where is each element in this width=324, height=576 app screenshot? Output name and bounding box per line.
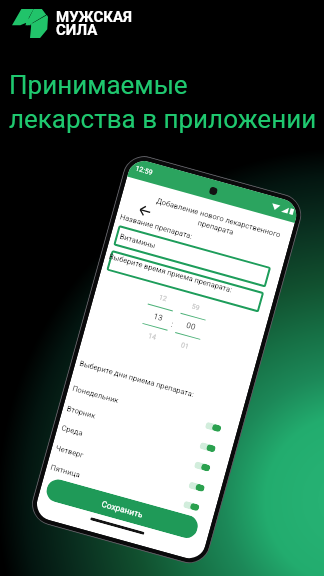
staticText: СИЛА (56, 21, 98, 39)
staticText: 01 (180, 341, 190, 351)
staticText: Выберите дни приема препарата: (78, 359, 195, 399)
staticText: Добавление нового лекарственного препара… (152, 196, 282, 248)
staticText: Витамины (119, 232, 157, 250)
button[interactable]: Среда (60, 419, 212, 476)
staticText: 13 (153, 312, 164, 323)
staticText: МУЖСКАЯ (56, 8, 132, 26)
staticText: Среда (60, 423, 84, 438)
button[interactable]: Четверг (54, 440, 207, 496)
staticText: 00 (185, 321, 196, 332)
button[interactable]: Назад (132, 198, 157, 223)
staticText: 12 (158, 293, 168, 303)
button[interactable]: Пятница (49, 459, 201, 515)
staticText: Четверг (55, 443, 85, 460)
staticText: Название препарата: (119, 212, 194, 241)
staticText: 59 (191, 303, 200, 312)
staticText: 14 (147, 332, 157, 342)
staticText: 12:59 (134, 164, 154, 177)
staticText: : (170, 320, 174, 329)
staticText: Пятница (49, 463, 82, 480)
staticText: Вторник (66, 404, 97, 421)
button[interactable]: Сохранить (44, 477, 200, 541)
staticText: Принимаемые лекарства в приложении (9, 70, 317, 134)
button[interactable]: Понедельник (71, 380, 223, 436)
button[interactable]: Вторник (65, 400, 218, 457)
staticText: Выберите время приема препарата: (108, 252, 234, 295)
staticText: Понедельник (71, 384, 120, 405)
staticText: Сохранить (100, 499, 145, 520)
